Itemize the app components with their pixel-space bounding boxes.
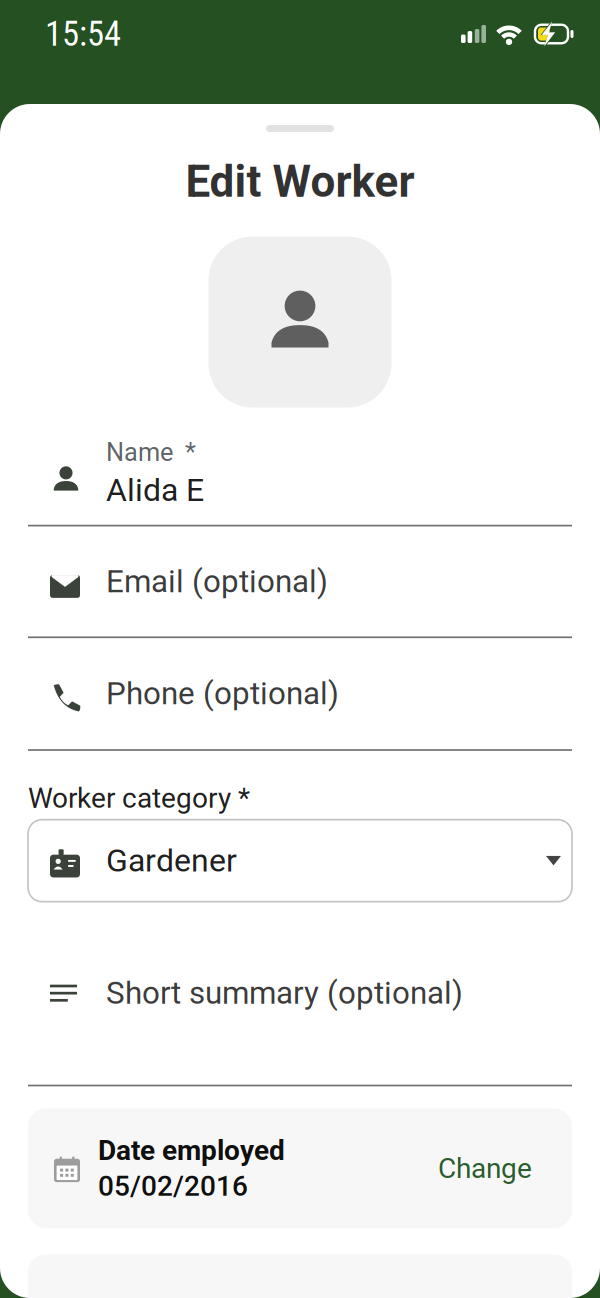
staticText: 15:54 [45,14,121,54]
button[interactable]: Gardener [0,815,600,902]
staticText: Worker category * [28,782,250,815]
staticText: 05/02/2016 [98,1170,248,1203]
button[interactable]: Date employed [0,1086,600,1228]
button[interactable]: Name * [0,408,600,525]
staticText: Phone (optional) [106,675,339,712]
button[interactable]: Short summary (optional) [0,902,600,1085]
staticText: Email (optional) [106,563,328,600]
staticText: Name * [106,438,196,467]
staticText: Short summary (optional) [106,975,463,1011]
staticText: Edit Worker [185,156,414,208]
staticText: Date employed [98,1134,285,1167]
staticText: Change [438,1152,532,1185]
button[interactable]: Email (optional) [0,526,600,636]
staticText: Alida E [106,471,204,509]
staticText: Gardener [106,842,237,879]
button[interactable]: Phone (optional) [0,638,600,749]
